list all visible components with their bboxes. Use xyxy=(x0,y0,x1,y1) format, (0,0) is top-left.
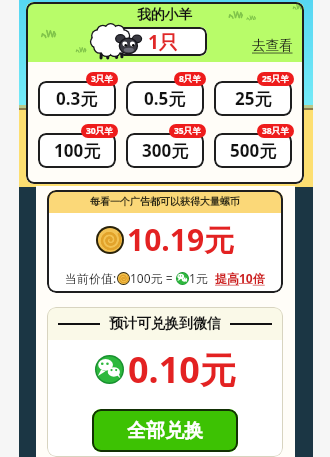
staticText: 500元 xyxy=(230,139,277,162)
staticText: 0.3元 xyxy=(56,87,98,110)
staticText: 10.19元 xyxy=(127,219,235,260)
button[interactable]: 300元 xyxy=(126,133,204,168)
staticText: 当前价值: xyxy=(65,270,117,286)
staticText: 全部兑换 xyxy=(127,419,203,443)
staticText: 30只羊 xyxy=(86,125,113,137)
staticText: 8只羊 xyxy=(179,73,201,85)
staticText: 3只羊 xyxy=(91,73,113,85)
button[interactable]: 0.5元 xyxy=(126,81,204,116)
button[interactable]: 提高10倍 xyxy=(215,270,265,286)
staticText: 100元 xyxy=(54,139,101,162)
button[interactable]: 100元 xyxy=(38,133,116,168)
staticText: 25只羊 xyxy=(262,73,289,85)
button[interactable]: 去查看 xyxy=(252,37,293,54)
staticText: 0.10元 xyxy=(128,345,236,394)
staticText: 35只羊 xyxy=(174,125,201,137)
staticText: 每看一个广告都可以获得大量螺币 xyxy=(90,195,240,208)
staticText: 1只 xyxy=(148,29,178,55)
staticText: 25元 xyxy=(235,87,272,110)
staticText: 100元 = xyxy=(130,270,176,286)
button[interactable]: 25元 xyxy=(214,81,292,116)
staticText: 38只羊 xyxy=(262,125,289,137)
staticText: 1元 xyxy=(189,270,215,286)
button[interactable]: 500元 xyxy=(214,133,292,168)
staticText: 我的小羊 xyxy=(137,6,193,23)
staticText: 0.5元 xyxy=(144,87,186,110)
staticText: 预计可兑换到微信 xyxy=(109,315,221,333)
button[interactable]: 0.3元 xyxy=(38,81,116,116)
button[interactable]: 全部兑换 xyxy=(92,409,238,452)
staticText: 300元 xyxy=(142,139,189,162)
